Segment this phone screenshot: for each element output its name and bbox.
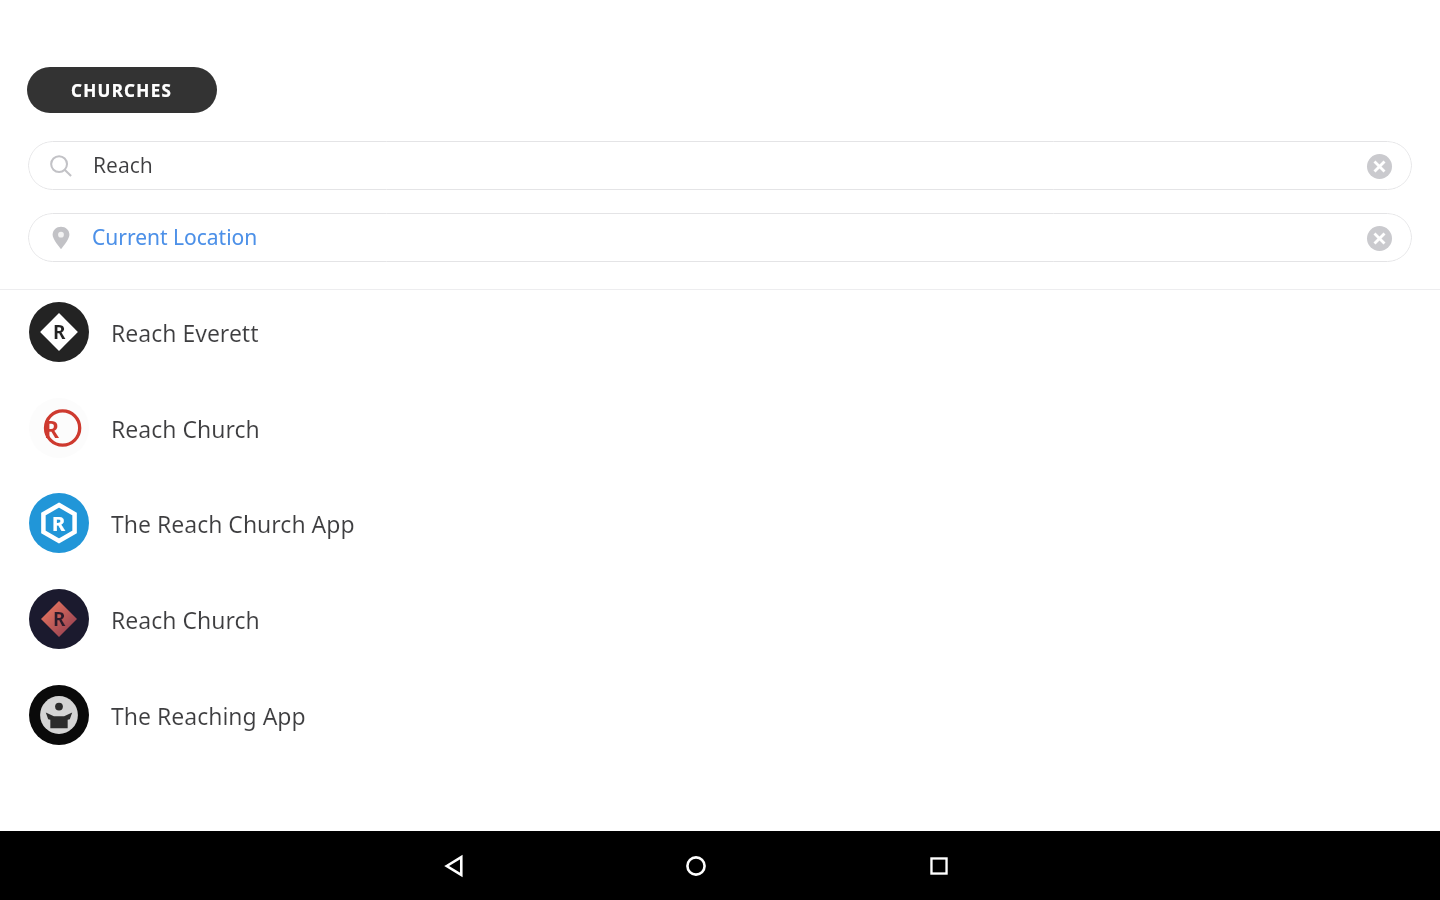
staticText: R [53,606,66,632]
staticText: Reach Everett [111,317,259,348]
button[interactable]: R [0,475,1440,571]
button[interactable]: Clear [1359,146,1399,186]
button[interactable]: Current Location [28,213,1412,262]
button[interactable]: R [0,380,1440,476]
button[interactable]: Reach [28,141,1412,190]
button[interactable]: Recent apps [915,831,963,900]
button[interactable]: CHURCHES [27,67,217,113]
button[interactable]: Home [672,831,720,900]
button[interactable]: Clear [1359,218,1399,258]
staticText: Current Location [92,223,1359,252]
staticText: The Reach Church App [111,508,355,539]
staticText: The Reaching App [111,700,306,731]
button[interactable]: Back [430,831,478,900]
staticText: Reach [93,151,1359,180]
button[interactable]: The Reaching App [0,667,1440,763]
staticText: R [44,413,60,444]
button[interactable]: R [0,284,1440,380]
staticText: Reach Church [111,604,260,635]
staticText: Reach Church [111,413,260,444]
staticText: CHURCHES [71,79,173,102]
staticText: R [53,319,66,345]
staticText: R [52,510,66,537]
button[interactable]: R [0,571,1440,667]
